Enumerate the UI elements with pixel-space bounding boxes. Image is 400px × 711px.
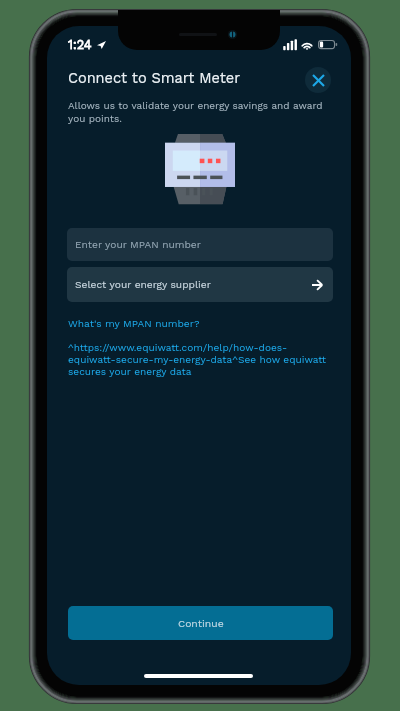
- button[interactable]: ^https://www.equiwatt.com/help/how-does-…: [68, 342, 327, 378]
- staticText: Select your energy supplier: [75, 279, 211, 291]
- staticText: Continue: [178, 617, 224, 629]
- staticText: Allows us to validate your energy saving…: [68, 100, 323, 125]
- button[interactable]: Select your energy supplier: [67, 267, 333, 302]
- staticText: Connect to Smart Meter: [68, 70, 241, 87]
- button[interactable]: Close: [305, 67, 331, 93]
- button[interactable]: What's my MPAN number?: [68, 318, 200, 330]
- staticText: Enter your MPAN number: [75, 239, 201, 251]
- button[interactable]: Enter your MPAN number: [67, 228, 333, 261]
- button[interactable]: Continue: [68, 606, 333, 640]
- staticText: 1:24: [68, 37, 92, 52]
